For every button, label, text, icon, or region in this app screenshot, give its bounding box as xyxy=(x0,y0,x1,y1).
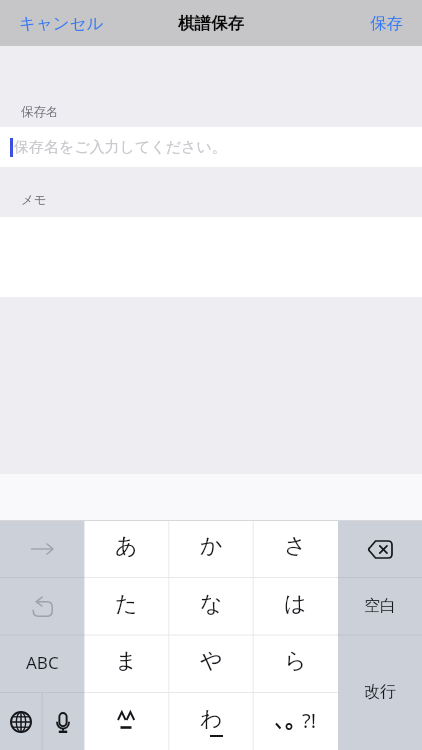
button[interactable]: Delete xyxy=(338,520,422,578)
staticText: ま xyxy=(115,647,138,675)
staticText: 改行 xyxy=(364,682,396,702)
button[interactable]: ら xyxy=(253,635,337,693)
button[interactable]: や xyxy=(169,635,253,693)
button[interactable]: 空白 xyxy=(338,578,422,636)
button[interactable]: キャンセル xyxy=(14,7,109,40)
staticText: ABC xyxy=(26,651,59,674)
staticText: ら xyxy=(284,647,307,675)
staticText: わ xyxy=(200,705,223,733)
button[interactable]: Undo xyxy=(0,578,84,636)
staticText: は xyxy=(284,590,307,618)
button[interactable]: あ xyxy=(84,520,168,578)
staticText: た xyxy=(115,590,138,618)
staticText: 保存 xyxy=(370,13,403,34)
button[interactable]: さ xyxy=(253,520,337,578)
staticText: メモ xyxy=(21,192,47,208)
staticText: ?! xyxy=(302,707,317,734)
staticText: さ xyxy=(284,532,307,560)
button[interactable]: Dictation xyxy=(42,693,84,750)
button[interactable]: Next candidate xyxy=(0,520,84,578)
button[interactable]: な xyxy=(169,578,253,636)
button[interactable]: た xyxy=(84,578,168,636)
button[interactable] xyxy=(84,693,168,750)
button[interactable]: Change keyboard xyxy=(0,693,42,750)
staticText: 棋譜保存 xyxy=(178,13,244,34)
button[interactable]: ?! xyxy=(253,693,337,750)
button[interactable]: 改行 xyxy=(338,635,422,750)
staticText: キャンセル xyxy=(19,13,104,34)
staticText: な xyxy=(200,590,223,618)
staticText: 空白 xyxy=(364,596,396,616)
button[interactable]: は xyxy=(253,578,337,636)
button[interactable]: わ xyxy=(169,693,253,750)
staticText: あ xyxy=(115,532,138,560)
button[interactable]: か xyxy=(169,520,253,578)
staticText: 保存名をご入力してください。 xyxy=(14,138,227,157)
button[interactable]: ま xyxy=(84,635,168,693)
button[interactable]: 保存 xyxy=(365,7,408,40)
staticText: や xyxy=(200,647,223,675)
staticText: 保存名 xyxy=(21,104,59,120)
staticText: か xyxy=(200,532,223,560)
button[interactable]: 保存名をご入力してください。 xyxy=(0,127,422,167)
button[interactable]: ABC xyxy=(0,635,84,693)
